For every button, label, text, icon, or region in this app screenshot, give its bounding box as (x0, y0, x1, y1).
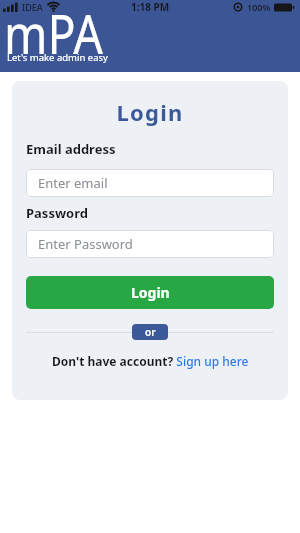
staticText: Enter email (38, 174, 108, 192)
staticText: IDEA (22, 1, 43, 13)
staticText: mPA (4, 0, 103, 68)
staticText: Password (26, 204, 88, 222)
button[interactable]: Enter email (26, 169, 274, 197)
button[interactable]: Enter Password (26, 230, 274, 258)
staticText: or (145, 325, 156, 339)
button[interactable]: or (132, 324, 168, 340)
staticText: Enter Password (38, 235, 133, 253)
staticText: Don't have account? Sign up here (52, 353, 249, 369)
staticText: Login (131, 283, 170, 302)
staticText: Email address (26, 140, 116, 158)
button[interactable]: Login (26, 276, 274, 309)
staticText: 100% (247, 1, 271, 13)
staticText: Let's make admin easy (7, 51, 108, 64)
staticText: Login (26, 97, 274, 127)
button[interactable]: Don't have account? Sign up here (26, 353, 274, 369)
staticText: 1:18 PM (131, 0, 170, 14)
